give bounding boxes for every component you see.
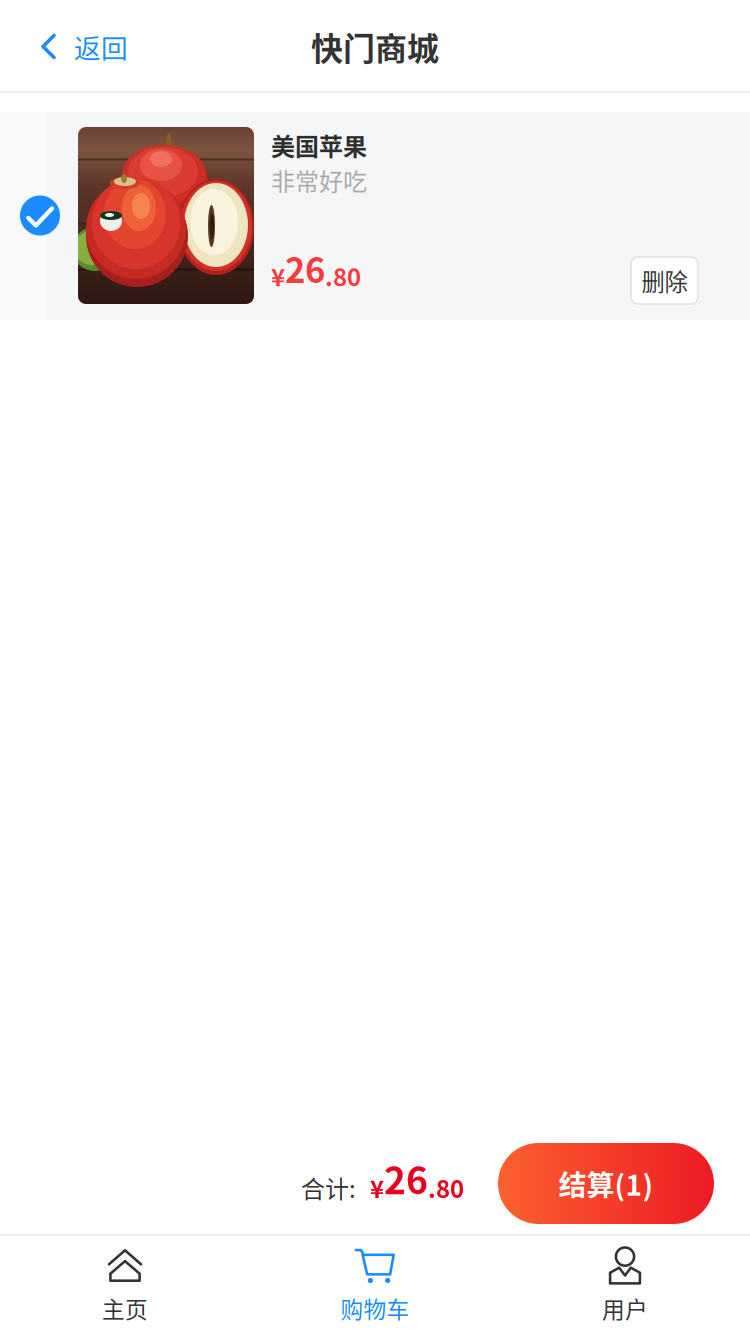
button[interactable]: 返回 [0,0,152,92]
staticText: 美国苹果 [271,128,367,162]
button[interactable]: 删除 [631,257,698,304]
staticText: .80 [325,258,361,293]
staticText: 结算(1) [558,1163,653,1204]
staticText: 合计: [301,1170,356,1205]
staticText: ¥ [370,1170,384,1205]
button[interactable]: 用户 [500,1236,750,1334]
button[interactable]: 主页 [0,1236,250,1334]
staticText: 26 [384,1151,428,1205]
staticText: 26 [285,243,325,293]
staticText: 购物车 [340,1292,409,1324]
staticText: ¥ [271,258,285,293]
staticText: 主页 [102,1292,148,1324]
button[interactable]: 购物车 [250,1236,500,1334]
staticText: 快门商城 [311,23,439,70]
staticText: .80 [428,1170,464,1205]
staticText: 非常好吃 [271,163,367,197]
staticText: 用户 [602,1292,648,1324]
button[interactable]: 结算(1) [498,1143,714,1224]
staticText: 删除 [641,264,687,297]
button[interactable]: 选中商品 [0,112,78,320]
staticText: 返回 [74,27,128,66]
